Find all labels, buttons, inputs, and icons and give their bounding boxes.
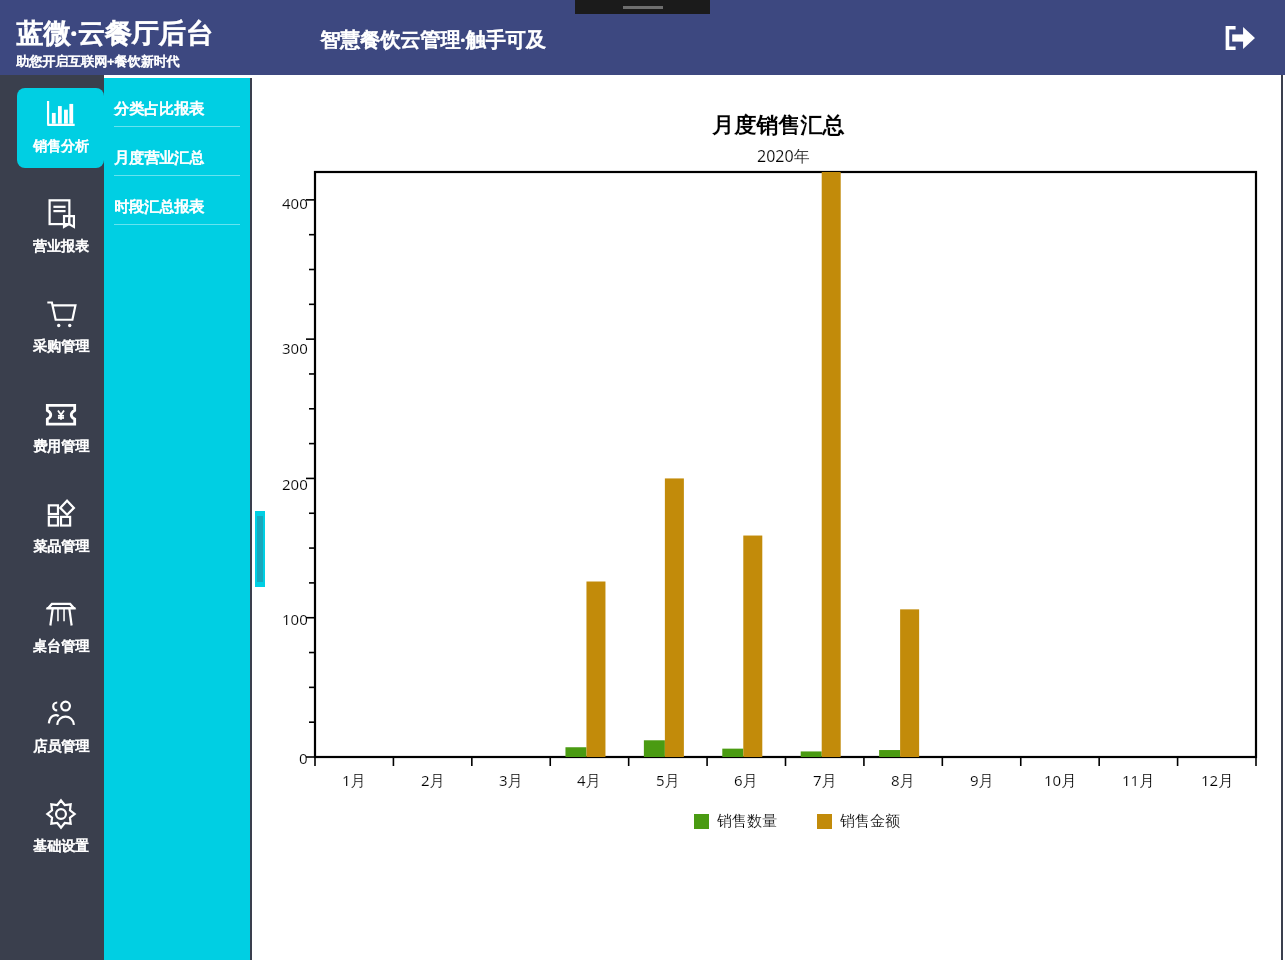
staticText: 6月 (734, 770, 758, 790)
staticText: 10月 (1044, 770, 1077, 790)
staticText: 0 (299, 748, 308, 768)
staticText: 4月 (577, 770, 601, 790)
staticText: 店员管理 (33, 738, 89, 756)
staticText: 菜品管理 (33, 538, 89, 556)
staticText: 12月 (1201, 770, 1234, 790)
staticText: 桌台管理 (33, 638, 89, 656)
staticText: 9月 (970, 770, 994, 790)
staticText: 2月 (421, 770, 445, 790)
staticText: 100 (282, 609, 308, 629)
staticText: 销售分析 (33, 138, 89, 156)
button[interactable]: 时段汇总报表 (104, 176, 250, 225)
staticText: 分类占比报表 (114, 100, 204, 119)
staticText: 费用管理 (33, 438, 89, 456)
staticText: 200 (282, 474, 308, 494)
staticText: 300 (282, 338, 308, 358)
staticText: 营业报表 (33, 238, 89, 256)
button[interactable]: 销售分析 (17, 88, 104, 168)
staticText: 3月 (499, 770, 523, 790)
staticText: 8月 (891, 770, 915, 790)
button[interactable]: 月度营业汇总 (104, 127, 250, 176)
staticText: 1月 (342, 770, 366, 790)
staticText: 11月 (1122, 770, 1155, 790)
staticText: 月度营业汇总 (114, 149, 204, 168)
staticText: 7月 (813, 770, 837, 790)
button[interactable]: 费用管理 (17, 388, 104, 468)
button[interactable]: 基础设置 (17, 788, 104, 868)
button[interactable]: Logout (1219, 18, 1259, 58)
staticText: 400 (282, 193, 308, 213)
staticText: 2020年 (757, 145, 810, 167)
button[interactable]: 店员管理 (17, 688, 104, 768)
staticText: 助您开启互联网+餐饮新时代 (16, 52, 180, 70)
staticText: 5月 (656, 770, 680, 790)
button[interactable]: 营业报表 (17, 188, 104, 268)
staticText: 时段汇总报表 (114, 198, 204, 217)
staticText: 蓝微·云餐厅后台 (16, 14, 213, 51)
button[interactable]: 采购管理 (17, 288, 104, 368)
staticText: 销售数量 (717, 812, 777, 831)
staticText: 月度销售汇总 (712, 112, 844, 140)
button[interactable]: 菜品管理 (17, 488, 104, 568)
staticText: 采购管理 (33, 338, 89, 356)
button[interactable]: 桌台管理 (17, 588, 104, 668)
button[interactable]: 分类占比报表 (104, 78, 250, 127)
staticText: 销售金额 (840, 812, 900, 831)
staticText: 基础设置 (33, 838, 89, 856)
staticText: 智慧餐饮云管理·触手可及 (320, 26, 546, 53)
